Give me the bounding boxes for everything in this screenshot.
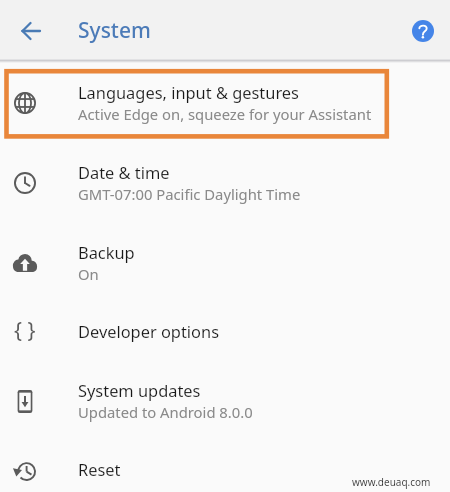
- staticText: Languages, input & gestures: [78, 81, 299, 103]
- staticText: { }: [14, 316, 36, 345]
- button[interactable]: System updates: [0, 361, 450, 441]
- staticText: Backup: [78, 241, 135, 263]
- staticText: System updates: [78, 379, 201, 401]
- staticText: GMT-07:00 Pacific Daylight Time: [78, 184, 301, 204]
- button[interactable]: Reset: [0, 441, 450, 492]
- button[interactable]: { }: [0, 303, 450, 361]
- button[interactable]: Languages, input & gestures: [0, 63, 450, 143]
- staticText: System: [78, 16, 151, 45]
- staticText: www.deuaq.com: [352, 475, 431, 489]
- staticText: Reset: [78, 458, 121, 480]
- button[interactable]: Backup: [0, 223, 450, 303]
- staticText: Date & time: [78, 161, 170, 183]
- staticText: On: [78, 264, 99, 284]
- staticText: Active Edge on, squeeze for your Assista…: [78, 104, 372, 124]
- staticText: Developer options: [78, 320, 219, 342]
- staticText: Updated to Android 8.0.0: [78, 402, 253, 422]
- button[interactable]: Help: [401, 9, 445, 53]
- button[interactable]: Date & time: [0, 143, 450, 223]
- button[interactable]: Back: [8, 8, 54, 54]
